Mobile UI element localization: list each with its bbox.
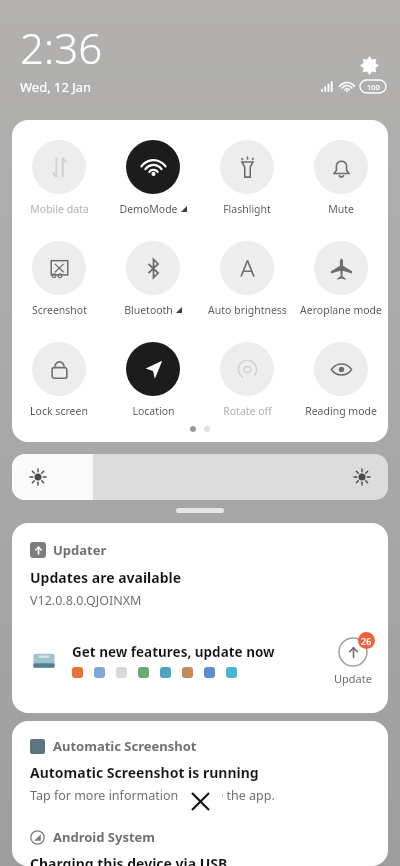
staticText: V12.0.8.0.QJOINXM xyxy=(30,592,142,609)
staticText: Bluetooth xyxy=(124,303,173,317)
staticText: Updates are available xyxy=(30,568,182,587)
button[interactable]: Bluetooth xyxy=(106,239,200,319)
staticText: Automatic Screenshot is running xyxy=(30,763,259,782)
button[interactable]: Close xyxy=(177,778,223,824)
staticText: Get new features, update now xyxy=(72,643,275,661)
staticText: 100 xyxy=(367,82,380,92)
button[interactable]: Aeroplane mode xyxy=(294,239,388,319)
staticText: Flashlight xyxy=(223,202,271,216)
staticText: 26 xyxy=(361,635,372,647)
button[interactable]: Automatic Screenshot xyxy=(12,721,388,866)
staticText: Screenshot xyxy=(32,303,87,317)
staticText: DemoMode xyxy=(119,202,178,216)
staticText: Auto brightness xyxy=(208,303,287,317)
button[interactable]: DemoMode xyxy=(106,138,200,218)
button[interactable] xyxy=(12,454,388,500)
staticText: Update xyxy=(334,671,372,686)
staticText: Automatic Screenshot xyxy=(53,737,197,755)
button[interactable]: Updater xyxy=(12,523,388,713)
button[interactable]: Reading mode xyxy=(294,340,388,420)
staticText: Reading mode xyxy=(305,404,377,418)
button[interactable]: Screenshot xyxy=(12,239,106,319)
button[interactable]: Mute xyxy=(294,138,388,218)
staticText: Updater xyxy=(53,541,107,559)
staticText: Tap for more information or stop the app… xyxy=(30,787,275,804)
staticText: Lock screen xyxy=(30,404,88,418)
staticText: Mobile data xyxy=(30,202,89,216)
button[interactable]: Lock screen xyxy=(12,340,106,420)
button[interactable]: Flashlight xyxy=(200,138,294,218)
button[interactable]: Rotate off xyxy=(200,340,294,420)
staticText: Android System xyxy=(53,828,156,846)
button[interactable]: Auto brightness xyxy=(200,239,294,319)
staticText: Aeroplane mode xyxy=(300,303,382,317)
button[interactable]: 26 xyxy=(334,635,372,686)
staticText: Charging this device via USB xyxy=(30,854,228,866)
staticText: Rotate off xyxy=(223,404,272,418)
button[interactable]: Location xyxy=(106,340,200,420)
staticText: Location xyxy=(132,404,175,418)
staticText: 2:36 xyxy=(20,19,103,76)
button[interactable]: Mobile data xyxy=(12,138,106,218)
button[interactable]: Settings xyxy=(352,48,386,82)
staticText: Wed, 12 Jan xyxy=(20,78,92,96)
staticText: Mute xyxy=(328,202,354,216)
